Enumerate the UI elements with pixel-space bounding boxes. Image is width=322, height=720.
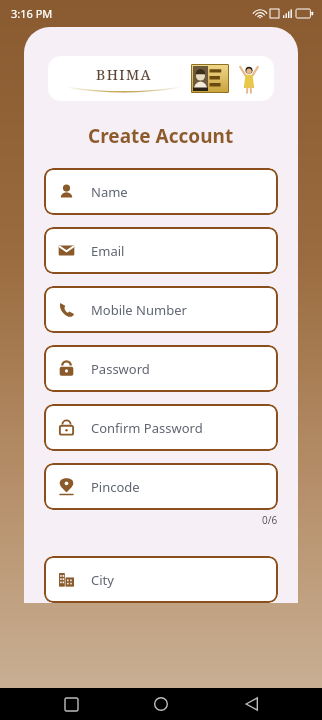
button[interactable]: Password bbox=[44, 345, 278, 392]
staticText: Pincode bbox=[91, 478, 140, 496]
staticText: Name bbox=[91, 183, 128, 201]
staticText: City bbox=[91, 571, 114, 589]
staticText: 3:16 PM bbox=[11, 6, 53, 21]
staticText: Password bbox=[91, 360, 150, 378]
button[interactable]: Pincode bbox=[44, 463, 278, 510]
staticText: Mobile Number bbox=[91, 301, 187, 319]
button[interactable]: Recents bbox=[51, 688, 91, 720]
button[interactable]: Email bbox=[44, 227, 278, 274]
button[interactable]: BHIMA bbox=[48, 56, 274, 101]
button[interactable]: City bbox=[44, 556, 278, 603]
staticText: 0/6 bbox=[262, 513, 278, 527]
staticText: Email bbox=[91, 242, 125, 260]
button[interactable]: Back bbox=[232, 688, 272, 720]
button[interactable]: Name bbox=[44, 168, 278, 215]
button[interactable]: Confirm Password bbox=[44, 404, 278, 451]
staticText: Create Account bbox=[88, 123, 234, 149]
staticText: BHIMA bbox=[96, 65, 152, 84]
button[interactable]: Home bbox=[141, 688, 181, 720]
button[interactable]: Mobile Number bbox=[44, 286, 278, 333]
staticText: Confirm Password bbox=[91, 419, 203, 437]
